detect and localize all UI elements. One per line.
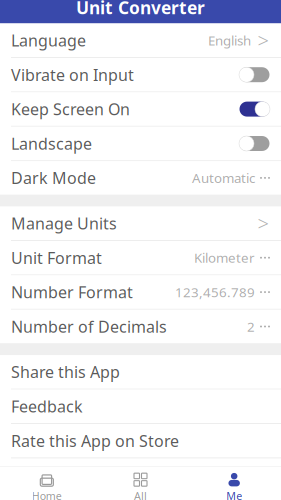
staticText: Unit Converter: [76, 0, 205, 19]
button[interactable]: Manage Units: [0, 207, 281, 240]
button[interactable]: Home: [0, 467, 94, 500]
staticText: Manage Units: [11, 213, 117, 234]
staticText: English: [208, 31, 251, 49]
staticText: Me: [226, 489, 242, 500]
staticText: Unit Format: [11, 247, 102, 268]
staticText: >: [257, 27, 268, 54]
staticText: Share this App: [11, 361, 120, 382]
staticText: Home: [32, 489, 62, 500]
staticText: 123,456.789: [175, 283, 255, 301]
staticText: Kilometer: [194, 249, 255, 266]
button[interactable]: Feedback: [0, 390, 281, 423]
staticText: Language: [11, 30, 86, 51]
staticText: Number Format: [11, 281, 133, 303]
button[interactable]: Number Format: [0, 275, 281, 309]
staticText: Feedback: [11, 396, 83, 417]
staticText: Rate this App on Store: [11, 430, 179, 451]
button[interactable]: Number of Decimals: [0, 310, 281, 343]
button[interactable]: Rate this App on Store: [0, 424, 281, 457]
staticText: Vibrate on Input: [11, 64, 134, 85]
button[interactable]: Landscape: [0, 127, 281, 160]
staticText: 2: [247, 318, 255, 335]
button[interactable]: Keep Screen On: [0, 92, 281, 126]
button[interactable]: Me: [187, 467, 281, 500]
button[interactable]: Unit Format: [0, 241, 281, 274]
staticText: Number of Decimals: [11, 316, 167, 337]
button[interactable]: Vibrate on Input: [0, 58, 281, 91]
staticText: Keep Screen On: [11, 98, 130, 120]
button[interactable]: Dark Mode: [0, 161, 281, 195]
staticText: >: [257, 210, 268, 237]
staticText: All: [134, 489, 147, 500]
staticText: Dark Mode: [11, 167, 96, 188]
button[interactable]: All: [94, 467, 187, 500]
staticText: Automatic: [192, 169, 255, 187]
button[interactable]: Share this App: [0, 355, 281, 389]
button[interactable]: Language: [0, 24, 281, 57]
staticText: Landscape: [11, 133, 92, 154]
